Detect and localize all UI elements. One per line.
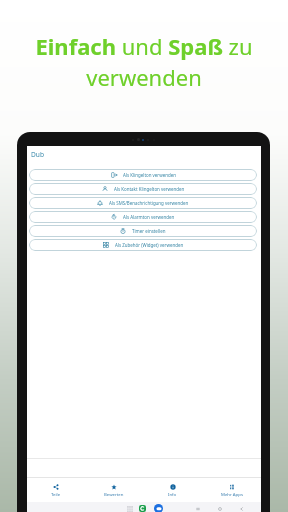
- staticText: Dub: [31, 150, 44, 159]
- button[interactable]: Timer einstellen: [29, 225, 257, 237]
- staticText: Teile: [51, 491, 61, 497]
- staticText: Als Kontakt Klingelton verwenden: [114, 186, 185, 192]
- other: Back: [239, 506, 245, 512]
- button[interactable]: Als Klingelton verwenden: [29, 169, 257, 181]
- staticText: Einfach und Spaß zu verwenden: [14, 31, 274, 93]
- staticText: Als Alarmton verwenden: [123, 214, 175, 220]
- staticText: Als Zubehör (Widget) verwenden: [115, 242, 184, 248]
- button[interactable]: Als Alarmton verwenden: [29, 211, 257, 223]
- button[interactable]: Als SMS/Benachrichtigung verwenden: [29, 197, 257, 209]
- button[interactable]: Teile: [27, 478, 85, 502]
- staticText: Bewerten: [104, 491, 124, 497]
- button[interactable]: Als Zubehör (Widget) verwenden: [29, 239, 257, 251]
- other: Home: [217, 506, 223, 512]
- button[interactable]: Bewerten: [85, 478, 143, 502]
- staticText: Als Klingelton verwenden: [123, 172, 176, 178]
- button[interactable]: Als Kontakt Klingelton verwenden: [29, 183, 257, 195]
- other: Recents: [195, 506, 201, 512]
- button[interactable]: Info: [143, 478, 202, 502]
- staticText: Mehr Apps: [221, 491, 243, 497]
- button[interactable]: Mehr Apps: [202, 478, 261, 502]
- staticText: Timer einstellen: [132, 228, 166, 234]
- staticText: Info: [168, 491, 177, 497]
- staticText: Als SMS/Benachrichtigung verwenden: [109, 200, 189, 206]
